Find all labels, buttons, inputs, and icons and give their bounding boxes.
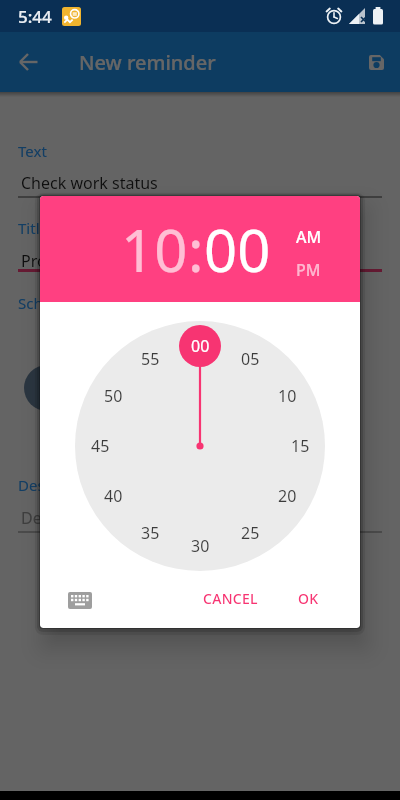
button[interactable]: 00 <box>204 210 271 289</box>
staticText: Schedule <box>18 293 82 313</box>
staticText: New reminder <box>79 49 216 76</box>
staticText: Description <box>21 507 108 529</box>
staticText: 20 <box>278 485 297 507</box>
staticText: CANCEL <box>203 589 258 608</box>
staticText: 50 <box>104 385 123 407</box>
staticText: 10 <box>278 385 297 407</box>
button[interactable]: CANCEL <box>194 580 266 616</box>
button[interactable]: OK <box>284 580 332 616</box>
staticText: 05 <box>241 348 260 370</box>
staticText: 45 <box>91 435 110 457</box>
button[interactable] <box>0 32 48 92</box>
staticText: 00 <box>191 335 210 357</box>
staticText: 15 <box>291 435 310 457</box>
staticText: 30 <box>191 535 210 557</box>
staticText: Title <box>18 218 48 238</box>
button[interactable]: AM <box>296 226 322 248</box>
staticText: 55 <box>141 348 160 370</box>
staticText: OK <box>298 589 319 608</box>
button[interactable]: PM <box>296 259 321 281</box>
staticText: 35 <box>141 522 160 544</box>
staticText: Description <box>18 475 99 495</box>
staticText: Text <box>18 141 47 161</box>
staticText: 5:44 <box>18 5 52 28</box>
button[interactable]: 10 <box>121 210 188 289</box>
button[interactable] <box>67 590 92 610</box>
staticText: Check work status <box>21 172 158 194</box>
staticText: : <box>188 210 204 289</box>
button[interactable] <box>352 32 400 92</box>
staticText: 25 <box>241 522 260 544</box>
staticText: Project status <box>21 250 124 272</box>
staticText: 40 <box>104 485 123 507</box>
